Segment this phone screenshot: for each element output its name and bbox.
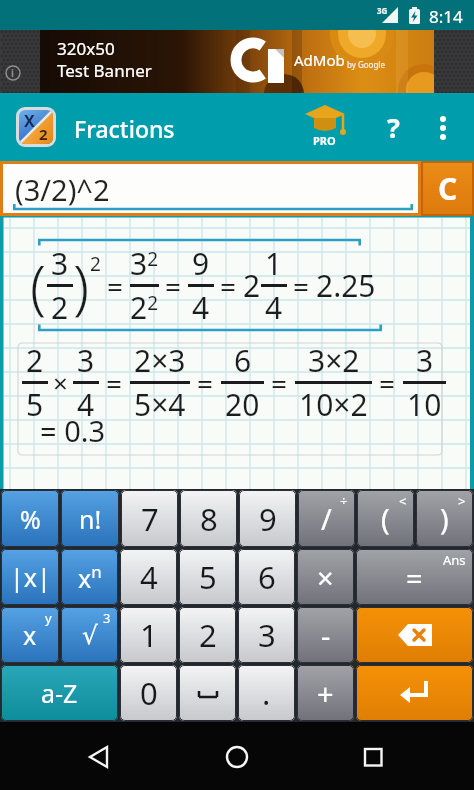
button[interactable]: 4	[120, 549, 177, 605]
button[interactable]	[356, 607, 473, 663]
staticText: 2	[51, 287, 69, 328]
staticText: >	[458, 492, 466, 510]
staticText: ?	[387, 109, 400, 146]
staticText: Ans	[443, 551, 466, 569]
staticText: a-Z	[41, 676, 78, 710]
staticText: =	[379, 364, 396, 402]
staticText: 3	[77, 340, 95, 381]
button[interactable]: 320x50	[0, 30, 474, 93]
staticText: 5	[26, 384, 44, 425]
button[interactable]: (	[357, 490, 414, 547]
staticText: =	[271, 364, 288, 402]
staticText: =	[293, 267, 310, 305]
staticText: |x|	[10, 560, 51, 594]
button[interactable]: √	[61, 607, 118, 663]
staticText: 3G	[377, 5, 388, 16]
staticText: )	[440, 499, 449, 538]
button[interactable]	[75, 732, 123, 780]
button[interactable]: 7	[121, 490, 178, 547]
staticText: 5×4	[134, 384, 186, 425]
button[interactable]	[356, 665, 473, 721]
button[interactable]: .	[238, 665, 295, 721]
staticText: (	[381, 499, 390, 538]
staticText: y	[45, 609, 52, 627]
staticText: 3	[103, 609, 111, 627]
button[interactable]: (3/2)^2	[0, 161, 421, 216]
staticText: 20	[225, 384, 260, 425]
button[interactable]: +	[297, 665, 354, 721]
button[interactable]: PRO	[300, 99, 350, 155]
button[interactable]: )	[416, 490, 473, 547]
staticText: Test Banner	[57, 59, 152, 82]
button[interactable]: %	[1, 490, 59, 547]
staticText: =	[220, 267, 237, 305]
button[interactable]: a-Z	[1, 665, 118, 721]
staticText: )	[73, 246, 90, 325]
button[interactable]: n!	[61, 490, 119, 547]
staticText: 1	[140, 614, 158, 656]
staticText: 3	[416, 340, 434, 381]
button[interactable]: 2	[179, 607, 236, 663]
button[interactable]: -	[297, 607, 354, 663]
button[interactable]: C	[421, 161, 474, 216]
button[interactable]: 0	[120, 665, 177, 721]
staticText: X	[24, 110, 35, 132]
staticText: i	[11, 66, 14, 80]
button[interactable]	[349, 732, 397, 780]
button[interactable]: ?	[372, 99, 414, 155]
staticText: 10	[407, 384, 442, 425]
staticText: 8	[200, 498, 218, 540]
staticText: -	[321, 616, 331, 655]
staticText: 2	[199, 614, 217, 656]
staticText: √	[82, 621, 98, 650]
staticText: C	[438, 168, 458, 209]
staticText: 2	[243, 265, 261, 306]
button[interactable]	[424, 99, 464, 155]
staticText: by Google	[347, 59, 385, 70]
staticText: =	[106, 364, 123, 402]
staticText: 2×3	[134, 340, 186, 381]
staticText: <	[399, 492, 407, 510]
button[interactable]: ×	[297, 549, 354, 605]
button[interactable]: 6	[238, 549, 295, 605]
staticText: 32	[130, 243, 159, 284]
button[interactable]	[213, 732, 261, 780]
button[interactable]: |x|	[1, 549, 59, 605]
button[interactable]: =	[356, 549, 473, 605]
staticText: = 0.3	[40, 411, 106, 450]
staticText: 4	[77, 384, 95, 425]
staticText: 4	[140, 556, 158, 598]
staticText: 2	[26, 340, 44, 381]
staticText: (	[30, 246, 47, 325]
staticText: 6	[258, 556, 276, 598]
staticText: =	[406, 558, 423, 597]
staticText: 3	[258, 614, 276, 656]
staticText: 0	[140, 672, 158, 714]
button[interactable]	[179, 665, 236, 721]
staticText: 3	[51, 243, 69, 284]
button[interactable]: /	[298, 490, 355, 547]
button[interactable]: x	[1, 607, 59, 663]
staticText: =	[165, 267, 182, 305]
staticText: x	[23, 618, 37, 652]
staticText: =	[107, 267, 124, 305]
staticText: ×	[53, 365, 68, 400]
button[interactable]: 5	[179, 549, 236, 605]
button[interactable]: 9	[239, 490, 296, 547]
staticText: 2	[39, 124, 48, 144]
staticText: 4	[265, 287, 283, 328]
staticText: ÷	[340, 492, 348, 510]
staticText: 2.25	[316, 265, 376, 306]
staticText: 2	[90, 251, 101, 277]
staticText: 320x50	[57, 37, 115, 60]
staticText: 5	[199, 556, 217, 598]
staticText: Fractions	[74, 113, 175, 144]
staticText: 6	[234, 340, 252, 381]
button[interactable]: 3	[238, 607, 295, 663]
staticText: PRO	[313, 133, 336, 148]
button[interactable]: X	[16, 107, 56, 147]
staticText: 4	[192, 287, 210, 328]
button[interactable]: xn	[61, 549, 118, 605]
button[interactable]: 1	[120, 607, 177, 663]
button[interactable]: 8	[180, 490, 237, 547]
